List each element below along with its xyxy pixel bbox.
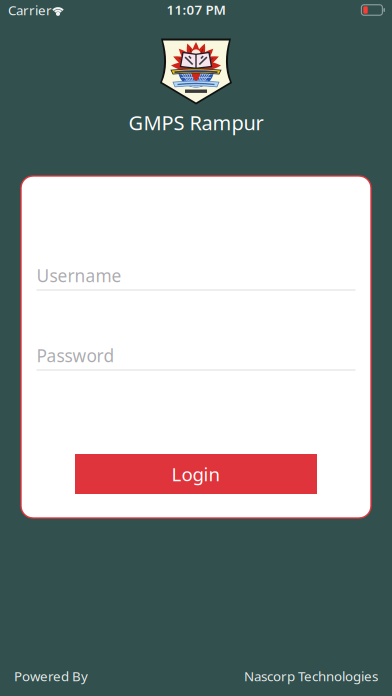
staticText: Powered By [14,667,88,685]
button[interactable]: Login [75,454,317,494]
staticText: Nascorp Technologies [244,667,378,685]
staticText: Username [36,264,121,287]
staticText: 11:07 PM [166,1,225,18]
staticText: GMPS Rampur [128,109,263,136]
staticText: Login [171,462,220,486]
staticText: Password [36,344,114,367]
staticText: Carrier [8,1,52,19]
